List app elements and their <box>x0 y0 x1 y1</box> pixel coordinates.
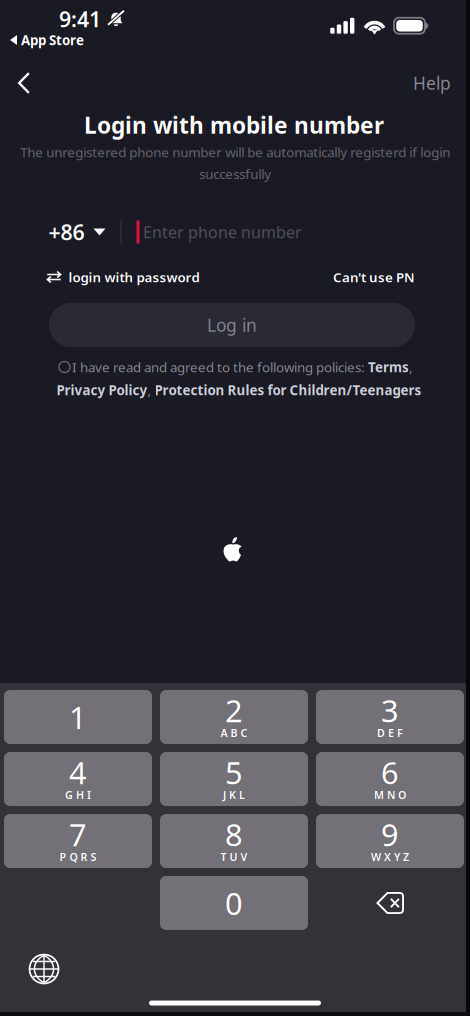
button[interactable]: 5 <box>160 752 308 806</box>
staticText: 7 <box>69 814 87 855</box>
staticText: Login with mobile number <box>84 110 384 140</box>
staticText: W X Y Z <box>371 850 409 864</box>
button[interactable]: 9 <box>316 814 464 868</box>
staticText: J K L <box>223 788 245 802</box>
staticText: The unregistered phone number will be au… <box>20 143 450 183</box>
button[interactable]: 4 <box>4 752 152 806</box>
staticText: Terms <box>368 358 409 376</box>
staticText: 0 <box>225 883 243 923</box>
button[interactable]: Delete <box>316 876 464 930</box>
staticText: G H I <box>65 788 91 802</box>
button[interactable]: App Store <box>6 27 88 53</box>
staticText: Privacy Policy <box>56 381 147 399</box>
staticText: 3 <box>381 690 399 731</box>
staticText: A B C <box>220 726 247 740</box>
staticText: Enter phone number <box>143 221 302 243</box>
staticText: T U V <box>220 850 247 864</box>
staticText: Log in <box>207 313 257 336</box>
staticText: D E F <box>377 726 403 740</box>
button[interactable]: +86 <box>44 209 109 255</box>
button[interactable]: 1 <box>4 690 152 744</box>
staticText: login with password <box>68 268 199 286</box>
staticText: 1 <box>69 697 87 737</box>
button[interactable]: Can't use PN <box>329 260 419 294</box>
staticText: Help <box>413 71 451 94</box>
staticText: 6 <box>381 752 399 793</box>
button[interactable]: login with password <box>42 260 203 294</box>
staticText: P Q R S <box>59 850 96 864</box>
button[interactable]: 7 <box>4 814 152 868</box>
button[interactable]: 3 <box>316 690 464 744</box>
staticText: M N O <box>374 788 406 802</box>
staticText: 9:41 <box>59 5 101 33</box>
button[interactable]: 8 <box>160 814 308 868</box>
button[interactable]: 0 <box>160 876 308 930</box>
staticText: 8 <box>225 814 243 855</box>
staticText: 2 <box>225 690 243 731</box>
staticText: Can't use PN <box>333 268 415 286</box>
staticText: 5 <box>225 752 243 793</box>
staticText: +86 <box>48 218 84 246</box>
button[interactable]: 6 <box>316 752 464 806</box>
button[interactable]: Log in <box>49 303 415 347</box>
staticText: I have read and agreed to the following … <box>72 358 368 376</box>
button[interactable]: Next keyboard <box>16 941 71 996</box>
staticText: 4 <box>69 752 87 793</box>
button[interactable]: Help <box>403 63 461 102</box>
staticText: , <box>147 381 154 399</box>
staticText: 9 <box>381 814 399 855</box>
staticText: , <box>409 358 413 376</box>
button[interactable]: Back <box>0 61 46 105</box>
staticText: Protection Rules for Children/Teenagers <box>154 381 421 399</box>
staticText: App Store <box>21 31 84 49</box>
button[interactable]: 2 <box>160 690 308 744</box>
